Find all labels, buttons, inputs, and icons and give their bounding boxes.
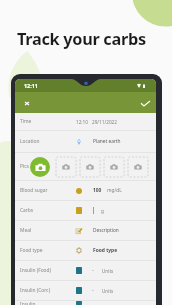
button[interactable]: Carbs [15, 201, 156, 221]
staticText: - [92, 267, 94, 274]
staticText: Blood sugar [20, 187, 76, 194]
staticText: - [92, 287, 94, 294]
staticText: Insulin (Corr.) [20, 287, 76, 294]
staticText: Units [102, 288, 114, 294]
button[interactable]: Insulin (Corr.) [15, 281, 156, 301]
button[interactable]: Add photo [104, 157, 124, 177]
staticText: 29/11/2022 [92, 119, 117, 125]
button[interactable]: Meal [15, 221, 156, 241]
staticText: 100 [93, 187, 102, 194]
staticText: Planet earth [93, 138, 121, 145]
staticText: Track your carbs [17, 28, 146, 50]
staticText: 12:10 [76, 119, 88, 125]
button[interactable]: Close [19, 95, 35, 111]
staticText: 12:11 [24, 82, 38, 89]
staticText: g [101, 208, 104, 214]
staticText: Time [20, 118, 76, 125]
button[interactable]: Insulin (Food) [15, 261, 156, 281]
button[interactable]: Insulin [15, 301, 156, 305]
button[interactable]: Save [137, 95, 153, 111]
staticText: Pics [20, 163, 30, 170]
button[interactable]: Take photo [30, 157, 50, 177]
button[interactable]: Time [15, 113, 156, 131]
staticText: Description [93, 227, 119, 234]
staticText: Carbs [20, 207, 76, 214]
button[interactable]: Food type [15, 241, 156, 261]
button[interactable]: Add photo [56, 157, 76, 177]
staticText: Insulin [20, 301, 76, 305]
staticText: Food type [93, 247, 118, 254]
staticText: Units [102, 268, 114, 274]
staticText: Location [20, 138, 76, 145]
staticText: Insulin (Food) [20, 267, 76, 274]
staticText: mg/dL [107, 187, 122, 194]
button[interactable]: Pics [15, 153, 156, 181]
button[interactable]: Location [15, 131, 156, 153]
button[interactable]: Add photo [80, 157, 100, 177]
button[interactable]: Add photo [128, 157, 148, 177]
staticText: Food type [20, 247, 76, 254]
staticText: Meal [20, 227, 76, 234]
button[interactable]: Blood sugar [15, 181, 156, 201]
